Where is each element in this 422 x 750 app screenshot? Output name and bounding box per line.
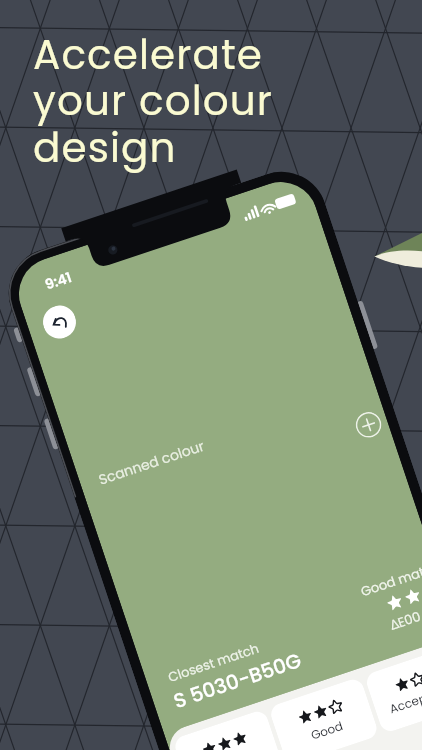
staticText: Accelerate your colour design (33, 26, 274, 177)
staticText: Good match (358, 558, 422, 600)
button[interactable]: Add colour (352, 408, 385, 441)
staticText: S 5030-B50G (170, 646, 305, 715)
staticText: Acceptable (387, 679, 422, 717)
staticText: Perfect (209, 747, 254, 750)
staticText: Scanned colour (96, 435, 208, 490)
staticText: ΔE00 1.2 (387, 601, 422, 634)
button[interactable]: Good (268, 676, 380, 750)
button[interactable]: Acceptable (364, 644, 422, 734)
staticText: Good (308, 717, 345, 744)
button[interactable]: Perfect (172, 709, 284, 750)
button[interactable]: Back (39, 301, 80, 343)
staticText: Closest match (165, 639, 261, 686)
staticText: 9:41 (42, 267, 74, 294)
